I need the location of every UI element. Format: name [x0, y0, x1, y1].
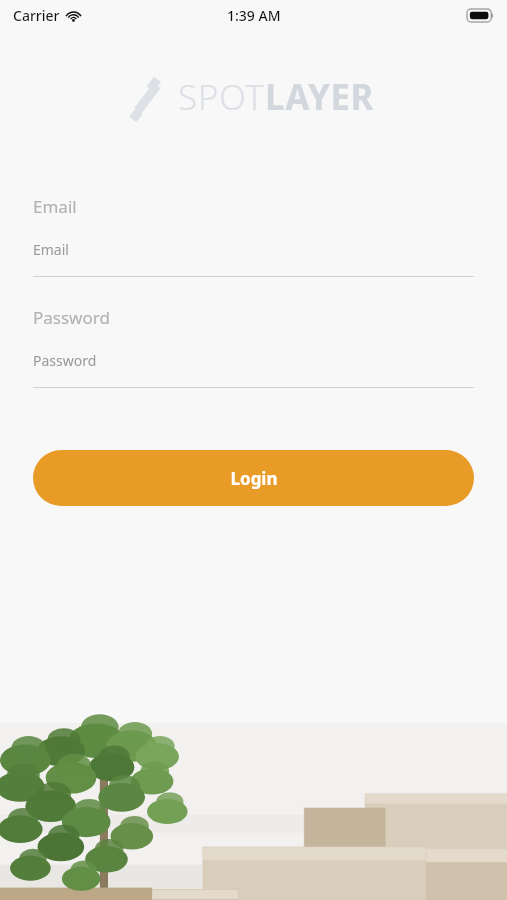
staticText: Carrier — [13, 6, 60, 25]
button[interactable]: Email — [33, 240, 474, 277]
button[interactable]: Password — [33, 351, 474, 388]
staticText: Login — [230, 467, 278, 490]
staticText: LAYER — [265, 73, 375, 121]
staticText: Email — [33, 240, 69, 259]
staticText: Password — [33, 351, 97, 370]
staticText: Password — [33, 306, 110, 329]
staticText: SPOT — [178, 73, 265, 121]
button[interactable]: Login — [33, 450, 474, 506]
staticText: 1:39 AM — [227, 6, 281, 25]
staticText: Email — [33, 195, 77, 218]
